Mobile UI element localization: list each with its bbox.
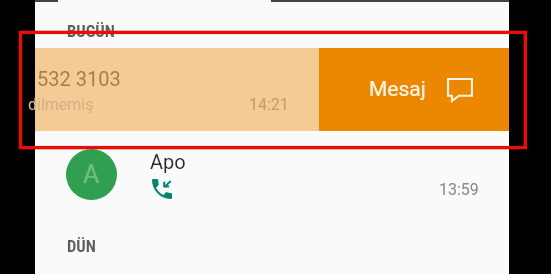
staticText: 14:21 xyxy=(249,95,289,114)
staticText: 532 3103 xyxy=(37,67,121,90)
other: Gelen arama xyxy=(152,179,172,199)
staticText: DÜN xyxy=(67,237,96,256)
staticText: dilmemiş xyxy=(28,95,94,114)
staticText: 13:59 xyxy=(439,180,479,199)
staticText: BUGÜN xyxy=(67,22,115,41)
staticText: Mesaj xyxy=(369,77,426,102)
staticText: A xyxy=(83,160,100,189)
button[interactable]: Mesaj xyxy=(319,48,509,131)
button[interactable]: A xyxy=(35,131,509,217)
button[interactable]: 532 3103 xyxy=(35,48,319,131)
staticText: Apo xyxy=(150,150,186,173)
other: Mesaj xyxy=(447,78,473,102)
